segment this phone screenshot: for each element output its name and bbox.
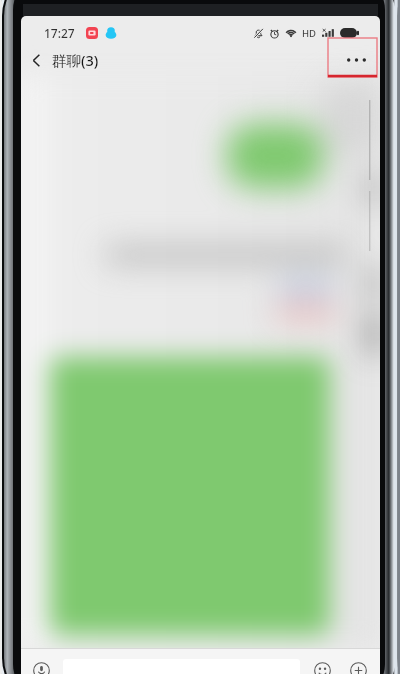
button[interactable]: More functions [348,660,368,674]
staticText: 群聊(3) [52,50,99,70]
button[interactable]: Emoji [312,660,332,674]
staticText: HD [302,27,317,40]
staticText: 17:27 [44,25,75,41]
button[interactable]: Back [21,44,52,76]
button[interactable]: Voice input [31,660,51,674]
button[interactable]: More options [332,44,380,76]
